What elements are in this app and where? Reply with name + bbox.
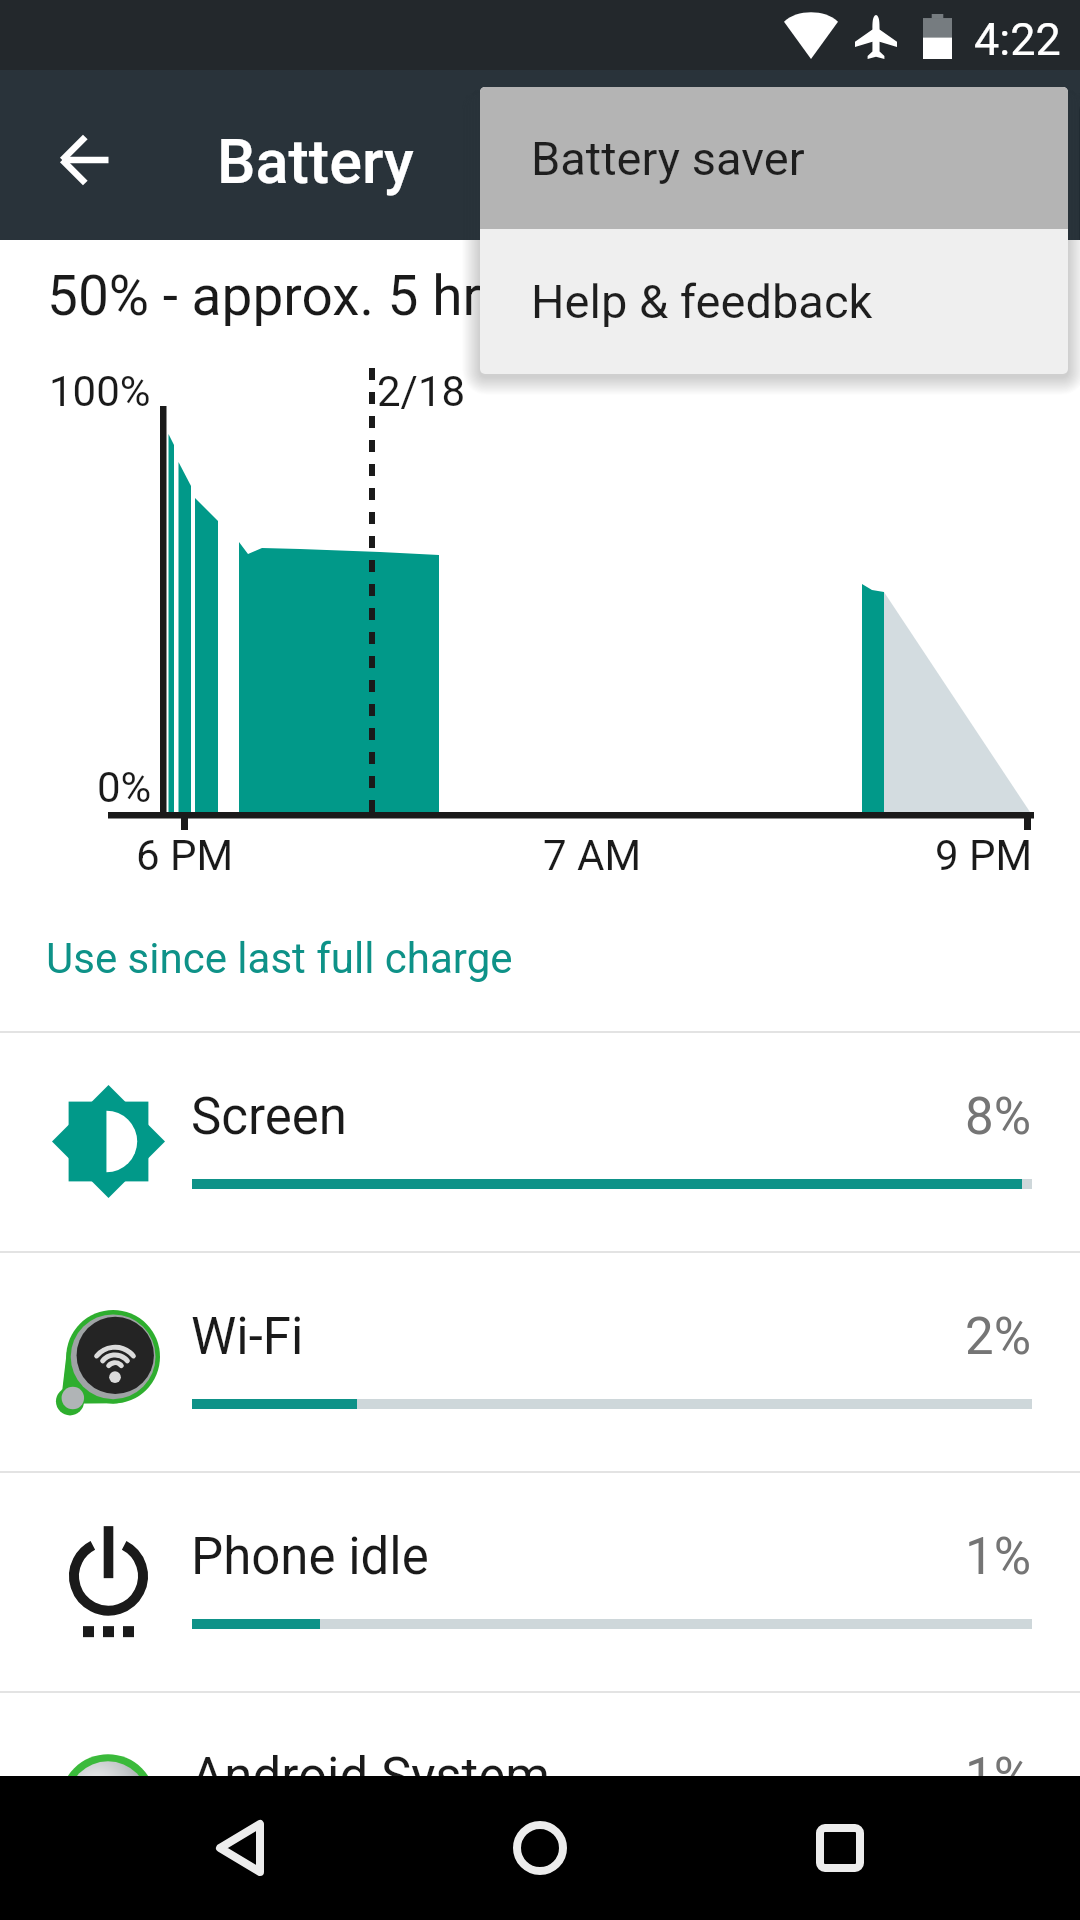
staticText: 6 PM [136, 831, 234, 880]
button[interactable]: Wi-Fi [0, 1253, 1080, 1471]
button[interactable]: Back [150, 1776, 330, 1920]
button[interactable]: Help & feedback [480, 229, 1068, 374]
staticText: 4:22 [974, 13, 1061, 66]
staticText: Wi-Fi [191, 1307, 304, 1367]
staticText: 2/18 [377, 367, 466, 416]
staticText: Help & feedback [531, 274, 873, 329]
staticText: 50% - approx. 5 hrs left [47, 264, 603, 328]
button[interactable]: Navigate up [10, 75, 160, 245]
staticText: Battery saver [531, 131, 805, 186]
staticText: 1% [965, 1747, 1032, 1807]
button[interactable]: Android System [0, 1693, 1080, 1911]
staticText: Screen [191, 1087, 348, 1147]
staticText: 8% [965, 1087, 1032, 1147]
button[interactable]: Battery saver [480, 87, 1068, 229]
button[interactable]: Screen [0, 1033, 1080, 1251]
staticText: 9 PM [935, 831, 1033, 880]
button[interactable]: Recent apps [750, 1776, 930, 1920]
staticText: 7 AM [543, 831, 642, 880]
staticText: Phone idle [191, 1527, 429, 1587]
staticText: 0% [97, 763, 152, 812]
button[interactable]: Use since last full charge [0, 880, 1080, 1031]
button[interactable]: Home [450, 1776, 630, 1920]
staticText: 100% [49, 367, 151, 416]
staticText: Battery [217, 126, 414, 197]
staticText: Android System [191, 1747, 551, 1807]
staticText: Use since last full charge [46, 934, 513, 983]
button[interactable]: Phone idle [0, 1473, 1080, 1691]
staticText: 1% [965, 1527, 1032, 1587]
staticText: 2% [965, 1307, 1032, 1367]
